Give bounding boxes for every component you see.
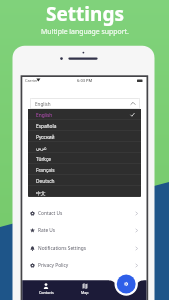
staticText: Privacy Policy [38,262,69,269]
button[interactable]: Rate Us [22,221,146,239]
staticText: Española [36,123,57,130]
button[interactable]: Türkçe [28,153,141,164]
staticText: Multiple language support. [41,27,129,36]
staticText: English [36,112,53,119]
staticText: Türkçe [36,156,51,163]
staticText: Deutsch [36,178,55,185]
button[interactable]: Français [28,164,141,175]
staticText: English [35,101,51,107]
staticText: Notifications Settings [38,245,87,252]
staticText: 中文 [36,190,46,196]
button[interactable]: Contacts [32,283,60,295]
button[interactable]: Privacy Policy [22,256,146,274]
staticText: Rate Us [38,227,56,234]
button[interactable]: Map [71,283,99,295]
staticText: Settings [46,1,124,27]
staticText: عربي [36,146,47,152]
button[interactable]: 中文 [28,186,141,197]
button[interactable]: Notifications Settings [22,239,146,257]
button[interactable]: Deutsch [28,175,141,186]
staticText: Carrier [25,78,39,83]
button[interactable]: English [30,98,140,109]
button[interactable]: عربي [28,142,141,153]
button[interactable]: Española [28,120,141,131]
button[interactable]: Русский [28,131,141,142]
button[interactable]: Contact Us [22,204,146,222]
staticText: Contact Us [38,210,63,217]
staticText: Map [81,290,89,295]
staticText: Contacts [39,290,54,295]
staticText: Français [36,167,55,174]
button[interactable]: English [28,109,141,120]
staticText: 6:03 PM [77,78,93,83]
staticText: Русский [36,134,55,141]
